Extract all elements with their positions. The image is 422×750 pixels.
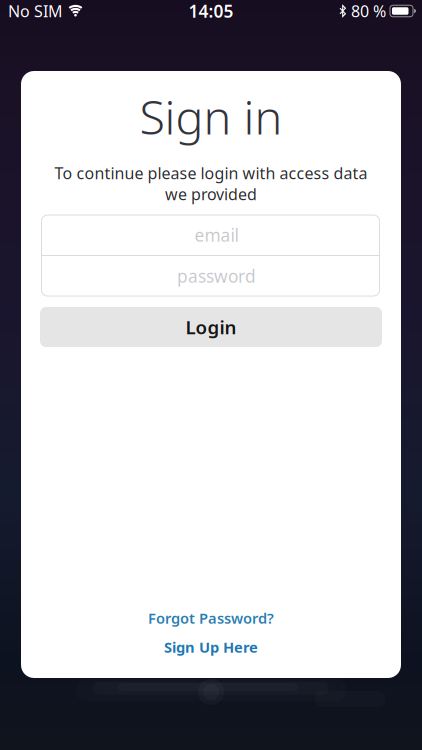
staticText: Forgot Password? [148,608,274,628]
button[interactable]: Sign Up Here [164,637,258,657]
staticText: No SIM [8,0,63,22]
staticText: 80 % [351,0,386,22]
staticText: email [194,223,238,246]
staticText: password [177,264,256,287]
staticText: we provided [165,183,257,205]
staticText: 14:05 [188,0,233,22]
button[interactable]: Login [40,307,382,347]
staticText: Login [185,315,236,339]
button[interactable]: Forgot Password? [148,608,274,628]
staticText: Sign Up Here [164,637,258,657]
staticText: To continue please login with access dat… [54,162,367,184]
staticText: Sign in [139,85,282,147]
